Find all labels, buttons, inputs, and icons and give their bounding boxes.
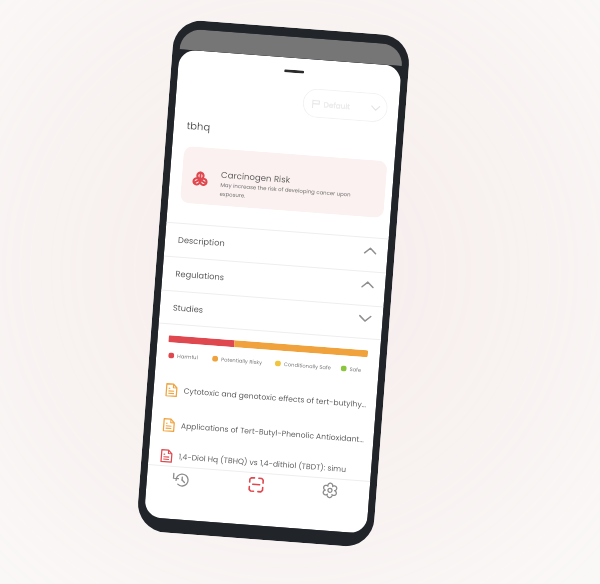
button[interactable]: Default: [302, 88, 389, 123]
button[interactable]: Scan barcode: [234, 463, 277, 506]
staticText: Conditionally Safe: [284, 361, 332, 372]
button[interactable]: Cytotoxic and genotoxic effects of tert-…: [152, 372, 377, 421]
button[interactable]: History: [159, 457, 202, 500]
button[interactable]: 1,4-Diol Hq (TBHQ) vs 1,4-dithiol (TBDT)…: [147, 438, 372, 487]
staticText: Studies: [172, 301, 204, 316]
staticText: May increase the risk of developing canc…: [219, 181, 356, 208]
staticText: Regulations: [175, 268, 225, 283]
staticText: Safe: [349, 366, 362, 374]
staticText: 1,4-Diol Hq (TBHQ) vs 1,4-dithiol (TBDT)…: [178, 451, 347, 475]
button[interactable]: Regulations: [161, 256, 386, 306]
staticText: Carcinogen Risk: [221, 169, 291, 186]
staticText: Default: [323, 99, 351, 111]
staticText: Applications of Tert-Butyl-Phenolic Anti…: [180, 420, 367, 445]
button[interactable]: Description: [164, 222, 389, 272]
staticText: Harmful: [177, 353, 198, 361]
staticText: Cytotoxic and genotoxic effects of tert-…: [183, 385, 367, 410]
button[interactable]: Applications of Tert-Butyl-Phenolic Anti…: [150, 407, 375, 456]
button[interactable]: Settings: [308, 468, 351, 511]
staticText: Potentially Risky: [221, 356, 263, 366]
button[interactable]: Carcinogen Risk: [180, 146, 388, 218]
button[interactable]: Studies: [159, 289, 383, 340]
staticText: tbhq: [186, 118, 211, 134]
staticText: Description: [178, 234, 225, 249]
